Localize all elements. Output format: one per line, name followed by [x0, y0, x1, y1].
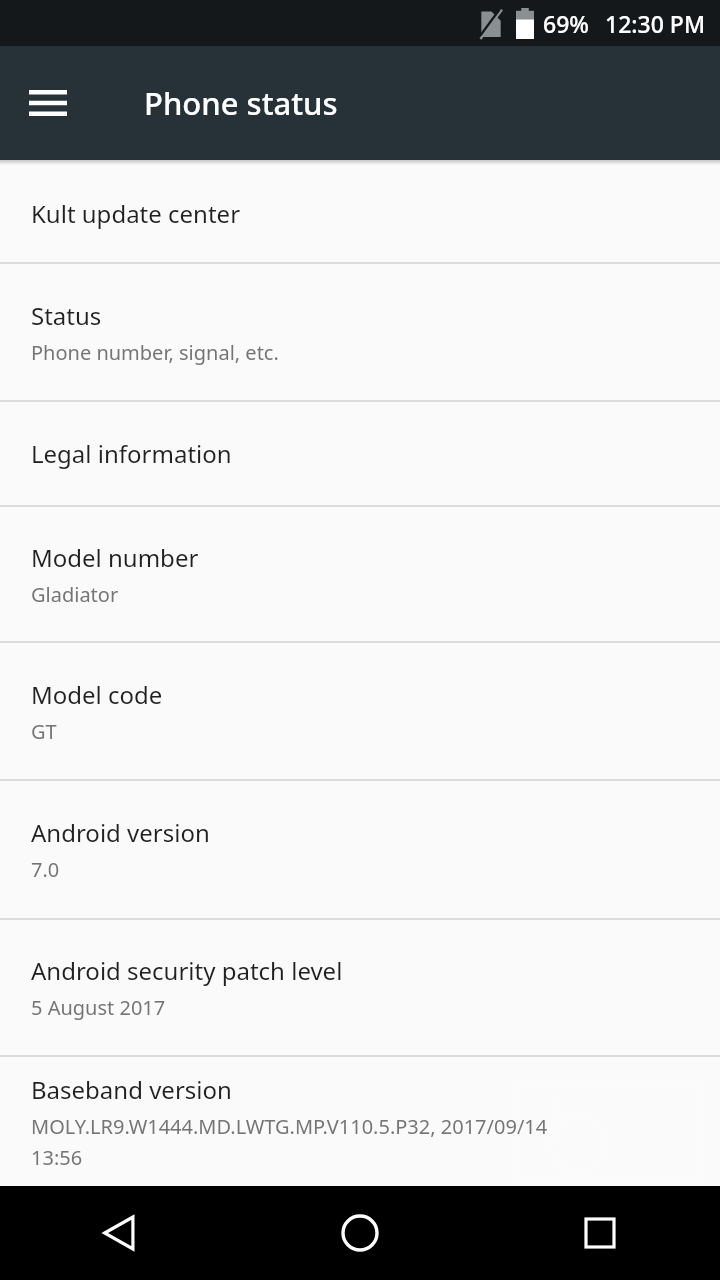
staticText: 12:30 PM [605, 8, 706, 39]
button[interactable]: Kult update center [0, 165, 720, 262]
button[interactable]: Android version [0, 781, 720, 918]
button[interactable]: Android security patch level [0, 920, 720, 1055]
button[interactable]: Recent apps [480, 1186, 720, 1280]
staticText: Model number [31, 541, 199, 574]
staticText: MOLY.LR9.W1444.MD.LWTG.MP.V110.5.P32, 20… [31, 1113, 548, 1171]
staticText: Baseband version [31, 1073, 232, 1106]
staticText: Android security patch level [31, 954, 343, 987]
button[interactable]: Status [0, 264, 720, 400]
staticText: Phone number, signal, etc. [31, 339, 279, 366]
staticText: Android version [31, 816, 210, 849]
staticText: Status [31, 299, 102, 332]
button[interactable]: Baseband version [0, 1057, 720, 1186]
staticText: Kult update center [31, 197, 241, 230]
staticText: Model code [31, 678, 163, 711]
button[interactable]: Model code [0, 643, 720, 779]
staticText: Gladiator [31, 581, 119, 608]
staticText: 69% [543, 8, 589, 39]
staticText: Phone status [144, 82, 338, 124]
button[interactable]: Legal information [0, 402, 720, 505]
button[interactable]: Home [240, 1186, 480, 1280]
staticText: 5 August 2017 [31, 994, 166, 1021]
button[interactable]: Open navigation menu [20, 75, 76, 131]
staticText: 7.0 [31, 856, 60, 883]
button[interactable]: Model number [0, 507, 720, 641]
button[interactable]: Back [0, 1186, 240, 1280]
staticText: GT [31, 718, 57, 745]
staticText: Legal information [31, 437, 232, 470]
